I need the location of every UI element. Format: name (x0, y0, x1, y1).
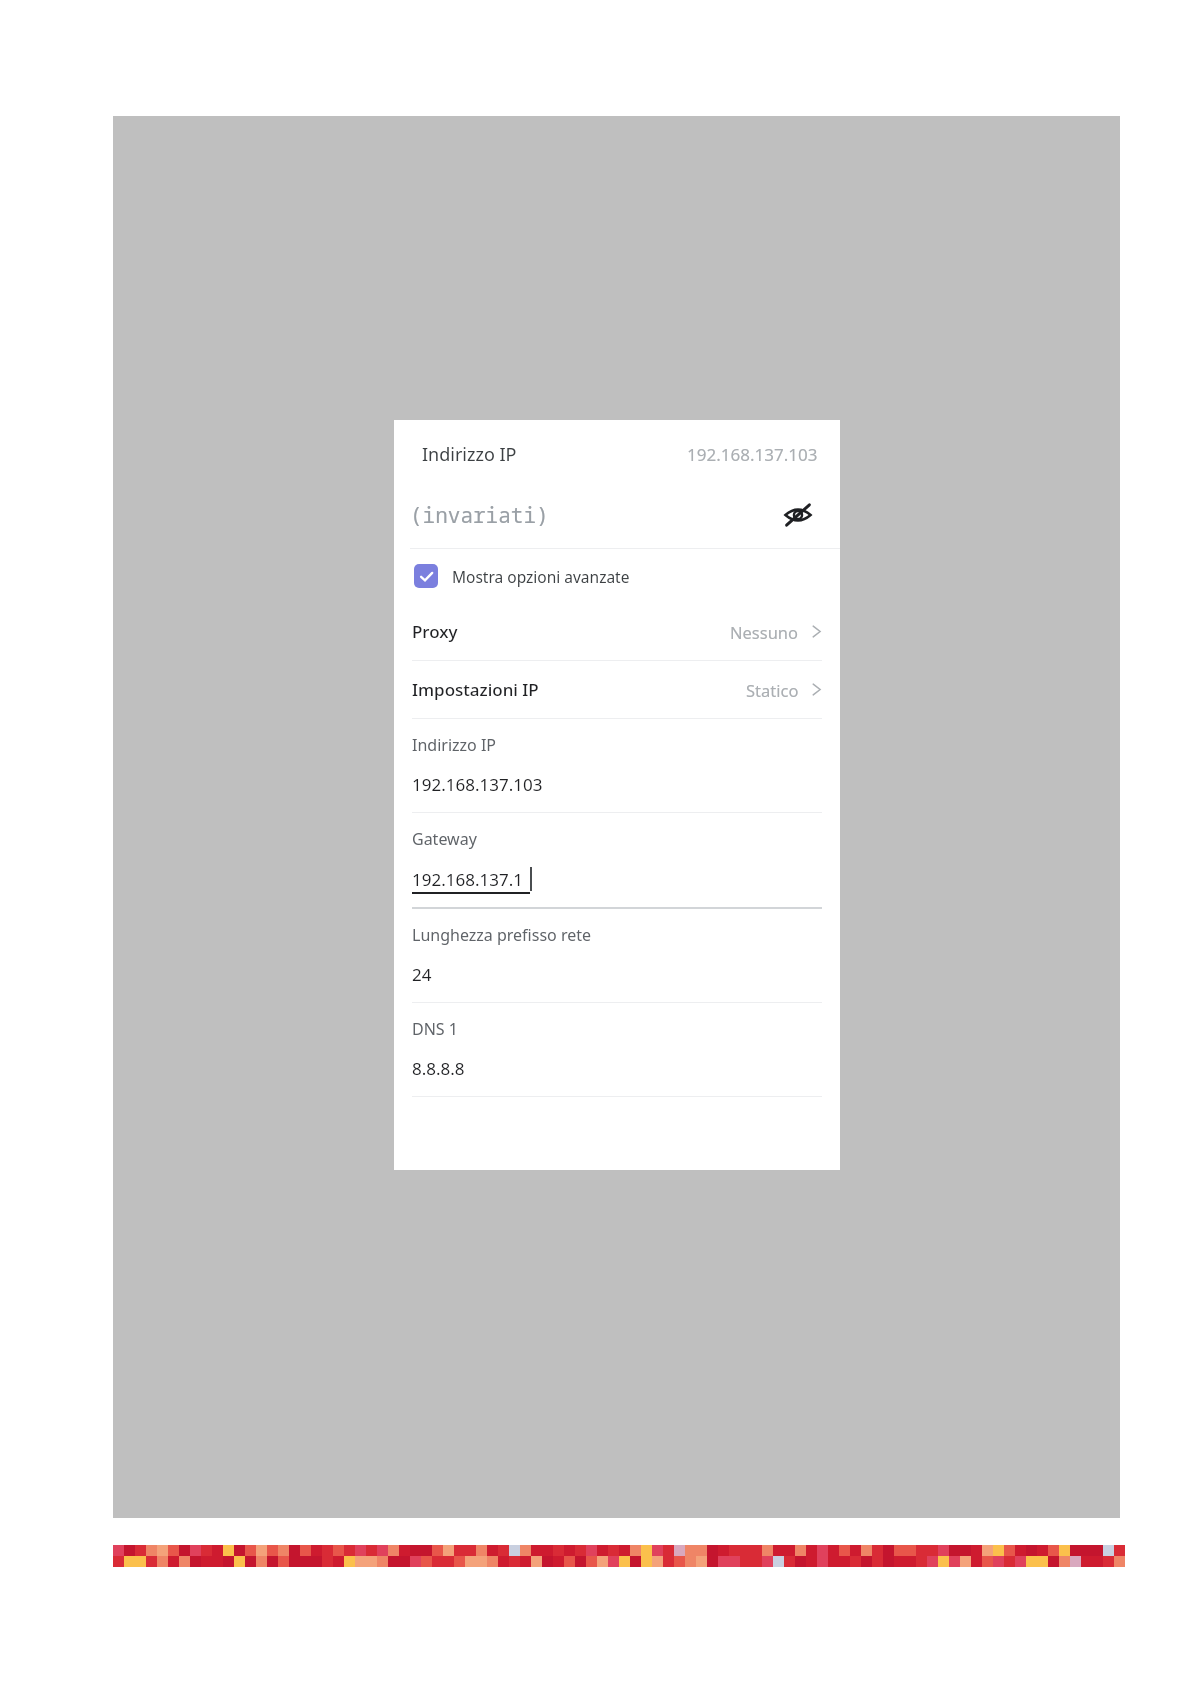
button[interactable]: Proxy (394, 603, 840, 660)
staticText: Mostra opzioni avanzate (452, 566, 630, 587)
staticText: Impostazioni IP (412, 678, 539, 701)
staticText: 192.168.137.1 (412, 868, 523, 891)
staticText: 8.8.8.8 (412, 1057, 465, 1080)
button[interactable]: Mostra opzioni avanzate (414, 564, 438, 588)
staticText: Statico (746, 679, 799, 701)
button[interactable]: Impostazioni IP (394, 661, 840, 718)
staticText: Nessuno (730, 621, 799, 643)
staticText: Indirizzo IP (422, 442, 517, 467)
button[interactable]: Mostra password (774, 491, 822, 539)
staticText: 192.168.137.103 (412, 773, 543, 796)
button[interactable]: Indirizzo IP (394, 426, 840, 482)
staticText: DNS 1 (412, 1018, 458, 1040)
staticText: Proxy (412, 620, 458, 643)
staticText: 24 (412, 963, 432, 986)
staticText: (invariati) (410, 501, 549, 530)
button[interactable]: Mostra opzioni avanzate (394, 549, 840, 603)
button[interactable]: 192.168.137.1 (412, 868, 530, 891)
staticText: Gateway (412, 828, 477, 850)
staticText: Lunghezza prefisso rete (412, 924, 591, 946)
staticText: Indirizzo IP (412, 734, 497, 756)
staticText: 192.168.137.103 (687, 443, 818, 466)
